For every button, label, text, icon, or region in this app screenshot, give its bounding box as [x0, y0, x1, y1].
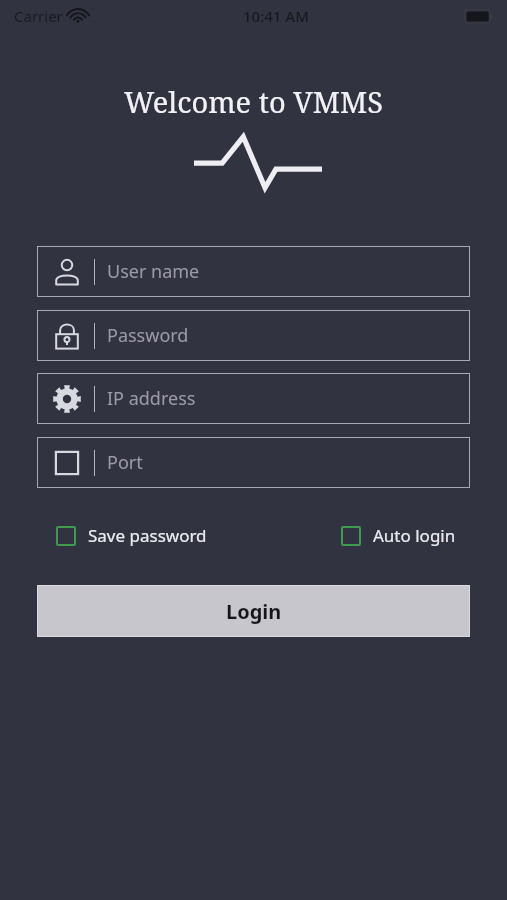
- button[interactable]: Login: [37, 585, 470, 637]
- staticText: Carrier: [14, 6, 63, 26]
- staticText: Login: [226, 598, 282, 625]
- staticText: User name: [107, 259, 200, 284]
- button[interactable]: Save password: [56, 520, 207, 551]
- button[interactable]: Password: [37, 310, 470, 361]
- staticText: Port: [107, 450, 143, 475]
- button[interactable]: Port: [37, 437, 470, 488]
- staticText: Password: [107, 323, 189, 348]
- button[interactable]: User name: [37, 246, 470, 297]
- staticText: Save password: [88, 524, 207, 547]
- staticText: Auto login: [373, 524, 456, 547]
- button[interactable]: Auto login: [341, 520, 456, 551]
- staticText: IP address: [107, 386, 196, 411]
- staticText: Welcome to VMMS: [0, 82, 507, 121]
- button[interactable]: IP address: [37, 373, 470, 424]
- staticText: 10:41 AM: [243, 6, 309, 26]
